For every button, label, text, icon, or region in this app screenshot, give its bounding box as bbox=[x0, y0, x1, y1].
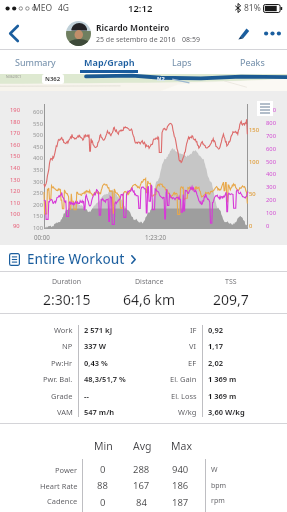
staticText: 186 bbox=[172, 479, 189, 492]
staticText: N362/IC1 bbox=[6, 74, 22, 79]
staticText: 288 bbox=[133, 463, 150, 476]
staticText: Ricardo Monteiro bbox=[96, 22, 170, 34]
staticText: 0,43 % bbox=[84, 358, 108, 368]
staticText: 200 bbox=[33, 201, 43, 209]
staticText: 00:00 bbox=[34, 233, 50, 241]
staticText: W bbox=[211, 465, 218, 475]
staticText: 12:12 bbox=[128, 2, 153, 15]
staticText: 2,02 bbox=[208, 358, 224, 368]
button[interactable]: Summary bbox=[0, 50, 71, 74]
staticText: Power bbox=[55, 465, 78, 475]
staticText: 300 bbox=[33, 178, 43, 186]
staticText: 25 de setembro de 2016 bbox=[96, 35, 176, 45]
staticText: El. Loss bbox=[171, 391, 197, 401]
staticText: 600 bbox=[33, 108, 43, 116]
staticText: 150 bbox=[249, 126, 259, 134]
staticText: 88 bbox=[97, 479, 108, 492]
staticText: MEO bbox=[33, 2, 53, 14]
staticText: 940 bbox=[172, 463, 189, 476]
staticText: 84 bbox=[136, 496, 147, 509]
staticText: N2 bbox=[157, 75, 165, 82]
staticText: 500 bbox=[266, 158, 276, 166]
staticText: 64,6 km bbox=[123, 290, 175, 309]
staticText: 3,60 W/kg bbox=[208, 407, 245, 417]
staticText: NP bbox=[62, 341, 73, 351]
staticText: Max bbox=[171, 439, 192, 453]
staticText: 700 bbox=[266, 132, 276, 140]
staticText: 90 bbox=[13, 222, 20, 230]
staticText: 150 bbox=[33, 212, 43, 220]
staticText: 600 bbox=[266, 145, 276, 153]
staticText: -- bbox=[84, 391, 89, 401]
staticText: bpm bbox=[211, 481, 227, 491]
staticText: W/kg bbox=[178, 407, 197, 417]
staticText: 130 bbox=[10, 176, 20, 184]
staticText: 120 bbox=[10, 187, 20, 195]
staticText: Pwr. Bal. bbox=[43, 374, 73, 384]
staticText: 250 bbox=[33, 189, 43, 197]
staticText: Heart Rate bbox=[40, 481, 78, 491]
staticText: 2:30:15 bbox=[43, 290, 91, 309]
staticText: 550 bbox=[33, 120, 43, 128]
staticText: Duration bbox=[52, 277, 82, 287]
staticText: Map/Graph bbox=[84, 56, 135, 68]
staticText: Min bbox=[94, 439, 113, 453]
staticText: 337 W bbox=[84, 341, 107, 351]
staticText: 400 bbox=[33, 154, 43, 162]
staticText: VI bbox=[189, 341, 197, 351]
staticText: Grade bbox=[51, 391, 73, 401]
staticText: 200 bbox=[266, 196, 276, 204]
staticText: 2 571 kJ bbox=[84, 325, 113, 335]
staticText: 1,17 bbox=[208, 341, 224, 351]
staticText: 160 bbox=[10, 141, 20, 149]
staticText: Cadence bbox=[47, 496, 78, 506]
staticText: 187 bbox=[172, 496, 189, 509]
staticText: TSS bbox=[225, 277, 237, 287]
staticText: 100 bbox=[10, 210, 20, 218]
staticText: Summary bbox=[15, 56, 56, 68]
staticText: EF bbox=[188, 358, 197, 368]
staticText: 48,3/51,7 % bbox=[84, 374, 126, 384]
staticText: Avg bbox=[133, 439, 152, 453]
staticText: 800 bbox=[266, 119, 276, 127]
staticText: 500 bbox=[33, 131, 43, 139]
staticText: 0 bbox=[100, 463, 106, 476]
staticText: Pw:Hr bbox=[51, 358, 73, 368]
staticText: 1 369 m bbox=[208, 391, 237, 401]
staticText: Peaks bbox=[240, 56, 265, 68]
staticText: 170 bbox=[10, 129, 20, 137]
staticText: El. Gain bbox=[170, 374, 197, 384]
button[interactable]: Map/Graph bbox=[71, 50, 147, 74]
staticText: 0 bbox=[249, 222, 253, 230]
button[interactable]: Back bbox=[0, 16, 28, 50]
staticText: 547 m/h bbox=[84, 407, 115, 417]
staticText: Entire Workout bbox=[27, 250, 125, 268]
button[interactable]: Edit bbox=[230, 16, 257, 50]
staticText: 0 bbox=[100, 496, 106, 509]
staticText: 4G bbox=[58, 2, 70, 14]
staticText: Laps bbox=[172, 56, 192, 68]
staticText: 81% bbox=[244, 2, 261, 14]
staticText: 180 bbox=[10, 118, 20, 126]
staticText: Distance bbox=[135, 277, 164, 287]
staticText: 100 bbox=[249, 158, 259, 166]
staticText: 50 bbox=[249, 190, 256, 198]
staticText: 08:59 bbox=[182, 35, 200, 45]
button[interactable]: Laps bbox=[147, 50, 217, 74]
staticText: 400 bbox=[266, 170, 276, 178]
staticText: 1 369 m bbox=[208, 374, 237, 384]
staticText: N362 bbox=[45, 75, 61, 83]
staticText: 140 bbox=[10, 164, 20, 172]
button[interactable]: More options bbox=[257, 16, 287, 50]
button[interactable]: Peaks bbox=[217, 50, 287, 74]
staticText: IF bbox=[190, 325, 197, 335]
staticText: 100 bbox=[33, 224, 43, 232]
staticText: 150 bbox=[10, 152, 20, 160]
staticText: Work bbox=[54, 325, 73, 335]
staticText: 100 bbox=[266, 209, 276, 217]
staticText: 0,92 bbox=[208, 325, 224, 335]
button[interactable]: Chart legend bbox=[257, 101, 273, 116]
staticText: 450 bbox=[33, 143, 43, 151]
staticText: rpm bbox=[211, 496, 225, 506]
button[interactable]: Entire Workout bbox=[0, 245, 287, 272]
